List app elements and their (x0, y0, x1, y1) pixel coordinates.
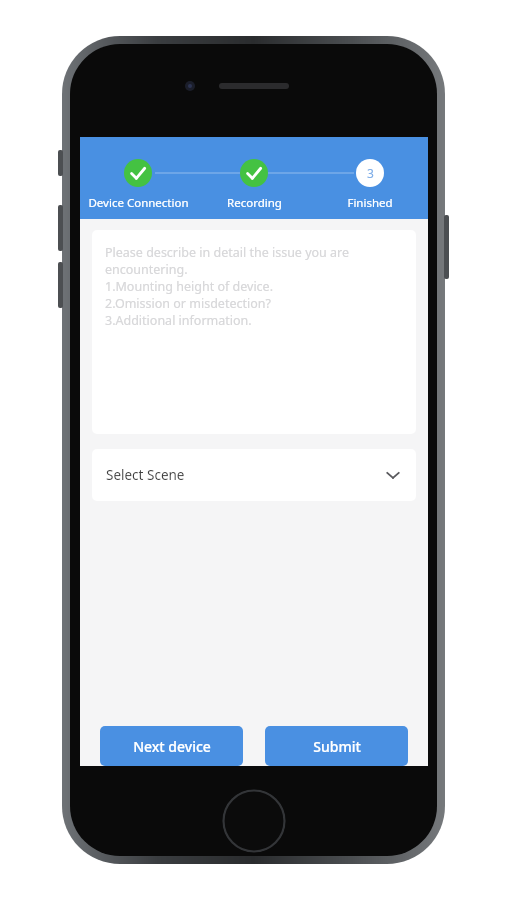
staticText: 3 (367, 165, 374, 181)
button[interactable]: Submit (265, 726, 408, 766)
button[interactable]: Next device (100, 726, 243, 766)
staticText: Device Connection (88, 195, 189, 211)
staticText: Submit (313, 737, 361, 756)
button[interactable]: Device Connection (80, 137, 196, 219)
staticText: Recording (227, 195, 282, 211)
button[interactable]: Recording (196, 137, 312, 219)
staticText: Next device (133, 737, 211, 756)
staticText: Select Scene (106, 466, 185, 484)
staticText: Finished (347, 195, 393, 211)
button[interactable]: Select Scene (92, 449, 416, 501)
staticText: Please describe in detail the issue you … (105, 244, 403, 329)
button[interactable]: Please describe in detail the issue you … (92, 230, 416, 434)
button[interactable]: 3 (312, 137, 428, 219)
button[interactable]: Home (222, 789, 286, 853)
